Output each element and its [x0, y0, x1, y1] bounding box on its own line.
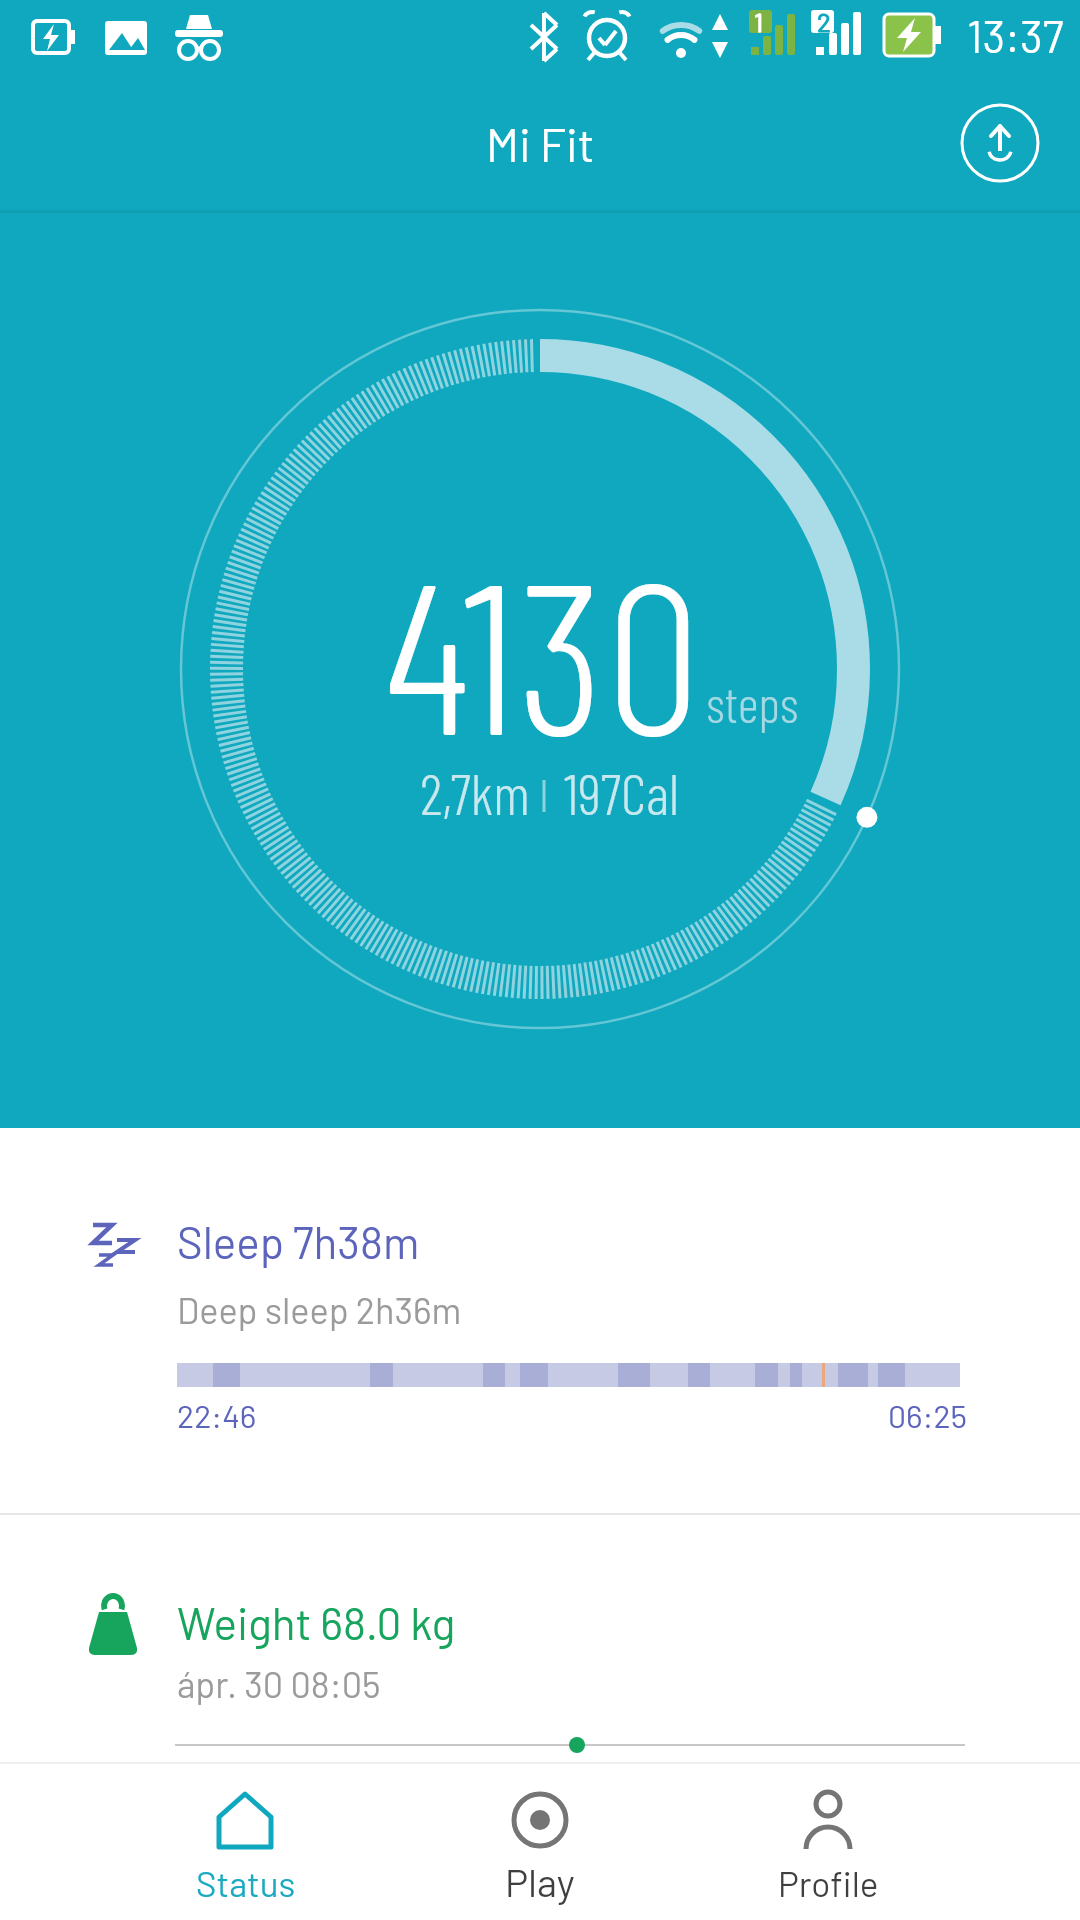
staticText: Mi Fit: [486, 116, 595, 171]
button[interactable]: [0, 1516, 1080, 1762]
staticText: Profile: [778, 1862, 879, 1904]
staticText: Deep sleep 2h36m: [177, 1288, 462, 1331]
staticText: Sleep 7h38m: [177, 1215, 420, 1268]
staticText: 13:37: [967, 9, 1064, 62]
staticText: 06:25: [888, 1396, 968, 1434]
staticText: 22:46: [177, 1396, 257, 1434]
staticText: Status: [196, 1862, 296, 1904]
button[interactable]: [720, 1764, 1080, 1920]
staticText: 2,7km: [420, 758, 530, 826]
staticText: Play: [505, 1858, 575, 1905]
staticText: ápr. 30 08:05: [177, 1662, 381, 1705]
button[interactable]: [360, 1764, 720, 1920]
staticText: steps: [706, 672, 799, 733]
staticText: 2: [817, 6, 831, 37]
staticText: Weight 68.0 kg: [177, 1596, 456, 1649]
staticText: 1: [754, 6, 764, 37]
button[interactable]: [958, 101, 1042, 185]
button[interactable]: [0, 1150, 1080, 1514]
staticText: 4130: [385, 522, 703, 778]
staticText: 197Cal: [564, 758, 680, 826]
button[interactable]: [0, 1764, 360, 1920]
